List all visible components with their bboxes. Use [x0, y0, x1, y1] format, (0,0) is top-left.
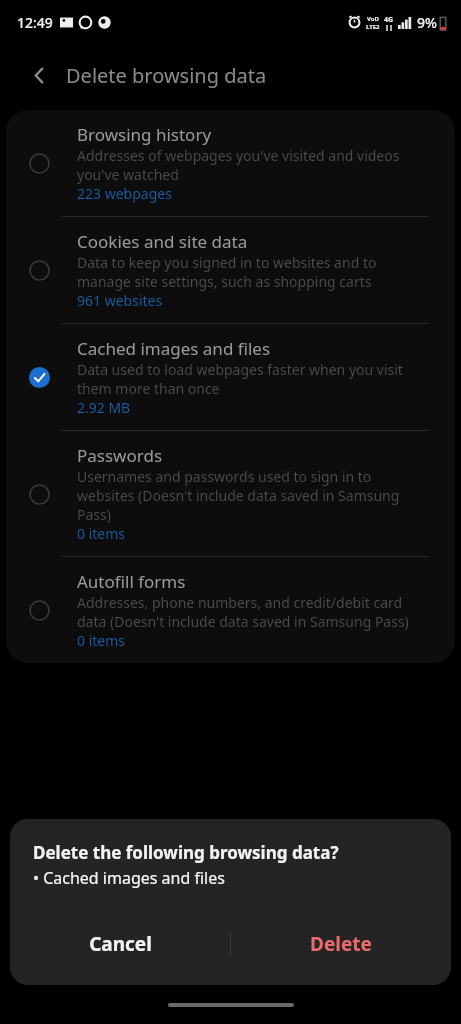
staticText: 961 websites: [77, 291, 163, 310]
staticText: 12:49: [17, 13, 53, 32]
staticText: Delete the following browsing data?: [33, 841, 339, 864]
button[interactable]: Browsing history: [6, 110, 455, 216]
staticText: Cached images and files: [77, 337, 271, 360]
staticText: Cookies and site data: [77, 230, 248, 253]
button[interactable]: Back: [22, 58, 56, 92]
staticText: 4G: [384, 15, 394, 25]
staticText: 0 items: [77, 524, 126, 543]
button[interactable]: Cookies and site data: [6, 217, 455, 323]
button[interactable]: Delete: [231, 919, 451, 969]
staticText: 2.92 MB: [77, 398, 131, 417]
staticText: Addresses of webpages you've visited and…: [77, 146, 425, 184]
staticText: • Cached images and files: [33, 867, 225, 889]
staticText: 223 webpages: [77, 184, 172, 203]
button[interactable]: Cancel: [10, 919, 230, 969]
staticText: Usernames and passwords used to sign in …: [77, 467, 425, 524]
button[interactable]: Autofill forms: [6, 557, 455, 663]
staticText: Browsing history: [77, 123, 212, 146]
staticText: Passwords: [77, 444, 163, 467]
staticText: 9%: [417, 13, 437, 32]
staticText: Data used to load webpages faster when y…: [77, 360, 425, 398]
staticText: Addresses, phone numbers, and credit/deb…: [77, 593, 425, 631]
staticText: 0 items: [77, 631, 126, 650]
staticText: Autofill forms: [77, 570, 186, 593]
staticText: LTE2: [366, 23, 380, 31]
staticText: Cancel: [89, 931, 152, 957]
button[interactable]: Passwords: [6, 431, 455, 556]
button[interactable]: Cached images and files: [6, 324, 455, 430]
staticText: Delete browsing data: [66, 62, 267, 89]
staticText: Data to keep you signed in to websites a…: [77, 253, 425, 291]
staticText: Delete: [310, 931, 372, 957]
staticText: VoD: [367, 15, 379, 23]
